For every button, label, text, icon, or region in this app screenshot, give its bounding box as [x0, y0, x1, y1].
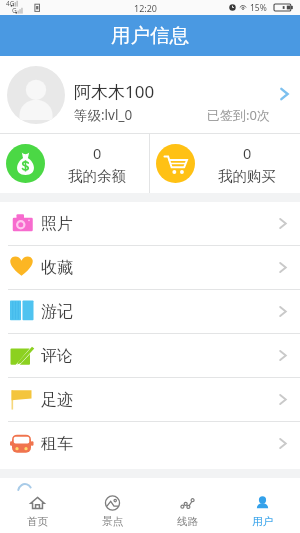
staticText: 用户信息	[111, 23, 189, 48]
staticText: 15%	[250, 2, 267, 14]
staticText: 已签到:0次	[207, 106, 270, 124]
staticText: 0	[243, 143, 252, 163]
staticText: 照片	[41, 214, 73, 234]
button[interactable]: 景点	[75, 478, 150, 533]
staticText: 等级:lvl_0	[74, 106, 133, 124]
button[interactable]: 用户	[225, 478, 300, 533]
button[interactable]: 0	[0, 134, 149, 193]
staticText: 阿木木100	[74, 80, 155, 103]
button[interactable]: 阿木木100	[0, 56, 300, 133]
staticText: 4G	[6, 0, 15, 8]
staticText: 收藏	[41, 258, 73, 278]
staticText: 景点	[102, 515, 123, 528]
staticText: 用户	[252, 515, 273, 528]
staticText: G	[12, 6, 17, 15]
button[interactable]: 租车	[0, 422, 300, 465]
staticText: 租车	[41, 434, 73, 454]
button[interactable]: 照片	[0, 202, 300, 245]
button[interactable]: 足迹	[0, 378, 300, 421]
staticText: 足迹	[41, 390, 73, 410]
staticText: 线路	[177, 515, 198, 528]
button[interactable]: 首页	[0, 478, 75, 533]
staticText: 游记	[41, 302, 73, 322]
button[interactable]: 线路	[150, 478, 225, 533]
staticText: 评论	[41, 346, 73, 366]
button[interactable]: 评论	[0, 334, 300, 377]
button[interactable]: 0	[150, 134, 300, 193]
staticText: 我的余额	[68, 167, 126, 185]
button[interactable]: 游记	[0, 290, 300, 333]
staticText: 12:20	[134, 2, 158, 14]
button[interactable]: 收藏	[0, 246, 300, 289]
staticText: 我的购买	[218, 167, 276, 185]
staticText: 首页	[27, 515, 48, 528]
staticText: 0	[93, 143, 102, 163]
